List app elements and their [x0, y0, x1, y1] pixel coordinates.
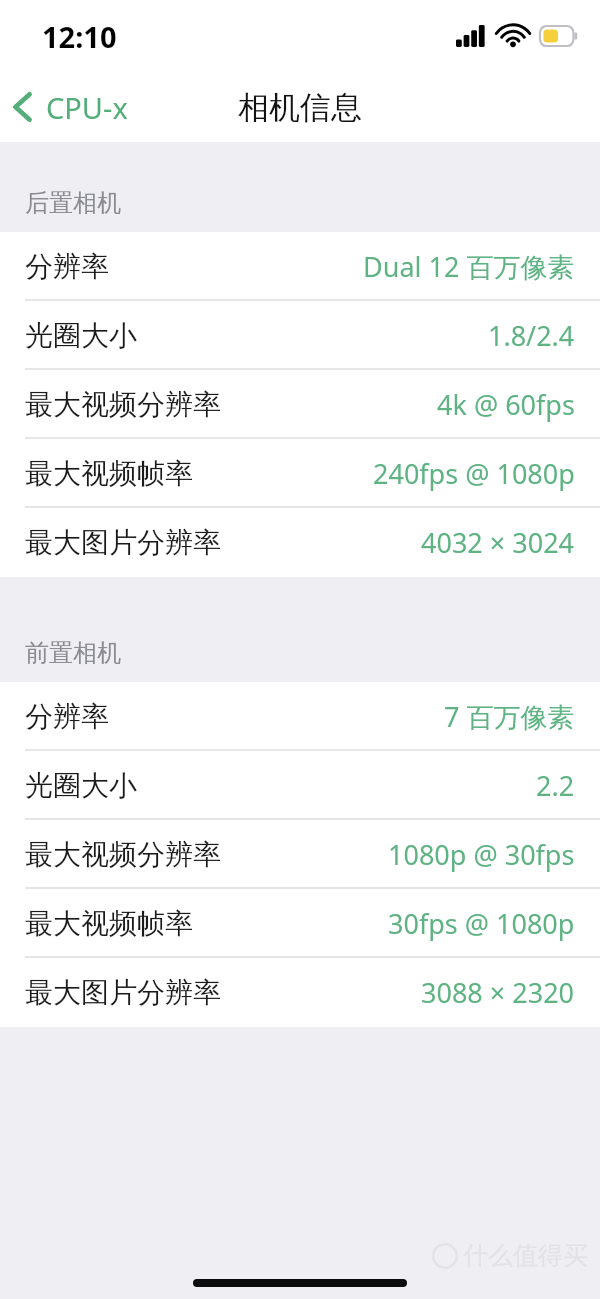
staticText: 相机信息	[0, 88, 600, 127]
staticText: 光圈大小	[25, 768, 137, 803]
staticText: 30fps @ 1080p	[388, 905, 575, 942]
staticText: 分辨率	[25, 699, 109, 734]
staticText: 最大视频分辨率	[25, 837, 221, 872]
button[interactable]: 最大视频帧率	[0, 889, 600, 958]
staticText: 最大视频帧率	[25, 456, 193, 491]
staticText: 光圈大小	[25, 318, 137, 353]
staticText: 240fps @ 1080p	[373, 455, 575, 492]
staticText: 最大视频分辨率	[25, 387, 221, 422]
staticText: 1080p @ 30fps	[388, 836, 575, 873]
button[interactable]: 最大图片分辨率	[0, 958, 600, 1027]
staticText: 2.2	[536, 767, 575, 804]
staticText: 什么值得买	[463, 1240, 588, 1271]
button[interactable]: 最大视频分辨率	[0, 370, 600, 439]
staticText: Dual 12 百万像素	[363, 248, 575, 285]
button[interactable]: 最大视频分辨率	[0, 820, 600, 889]
staticText: 1.8/2.4	[488, 317, 575, 354]
staticText: 7 百万像素	[444, 698, 575, 735]
staticText: 4k @ 60fps	[437, 386, 575, 423]
button[interactable]: 分辨率	[0, 232, 600, 301]
button[interactable]: 最大图片分辨率	[0, 508, 600, 577]
button[interactable]: 分辨率	[0, 682, 600, 751]
staticText: 3088 × 2320	[421, 974, 575, 1011]
button[interactable]: 光圈大小	[0, 751, 600, 820]
staticText: 前置相机	[25, 638, 121, 668]
staticText: 分辨率	[25, 249, 109, 284]
button[interactable]: 最大视频帧率	[0, 439, 600, 508]
staticText: 最大视频帧率	[25, 906, 193, 941]
staticText: CPU-x	[46, 88, 128, 127]
button[interactable]: 光圈大小	[0, 301, 600, 370]
staticText: 后置相机	[25, 188, 121, 218]
staticText: 4032 × 3024	[421, 524, 575, 561]
staticText: 12:10	[42, 17, 117, 56]
staticText: 最大图片分辨率	[25, 975, 221, 1010]
button[interactable]: CPU-x	[0, 72, 142, 142]
staticText: 最大图片分辨率	[25, 525, 221, 560]
